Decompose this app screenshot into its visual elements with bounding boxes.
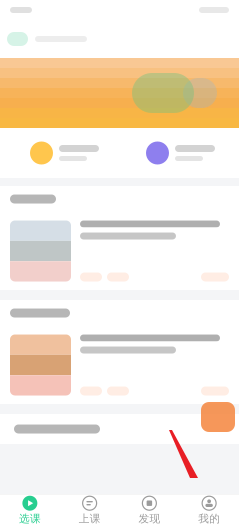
button[interactable]: Promotion <box>201 402 235 432</box>
button[interactable] <box>30 128 115 178</box>
button[interactable] <box>146 128 231 178</box>
button[interactable]: 发现 <box>119 494 179 526</box>
button[interactable] <box>10 212 229 290</box>
staticText: 我的 <box>198 512 220 525</box>
button[interactable]: 选课 <box>0 494 60 526</box>
button[interactable] <box>10 326 229 404</box>
button[interactable]: 上课 <box>60 494 120 526</box>
button[interactable]: 我的 <box>179 494 239 526</box>
staticText: 上课 <box>79 512 101 525</box>
staticText: 选课 <box>19 512 41 525</box>
staticText: 发现 <box>138 512 160 525</box>
